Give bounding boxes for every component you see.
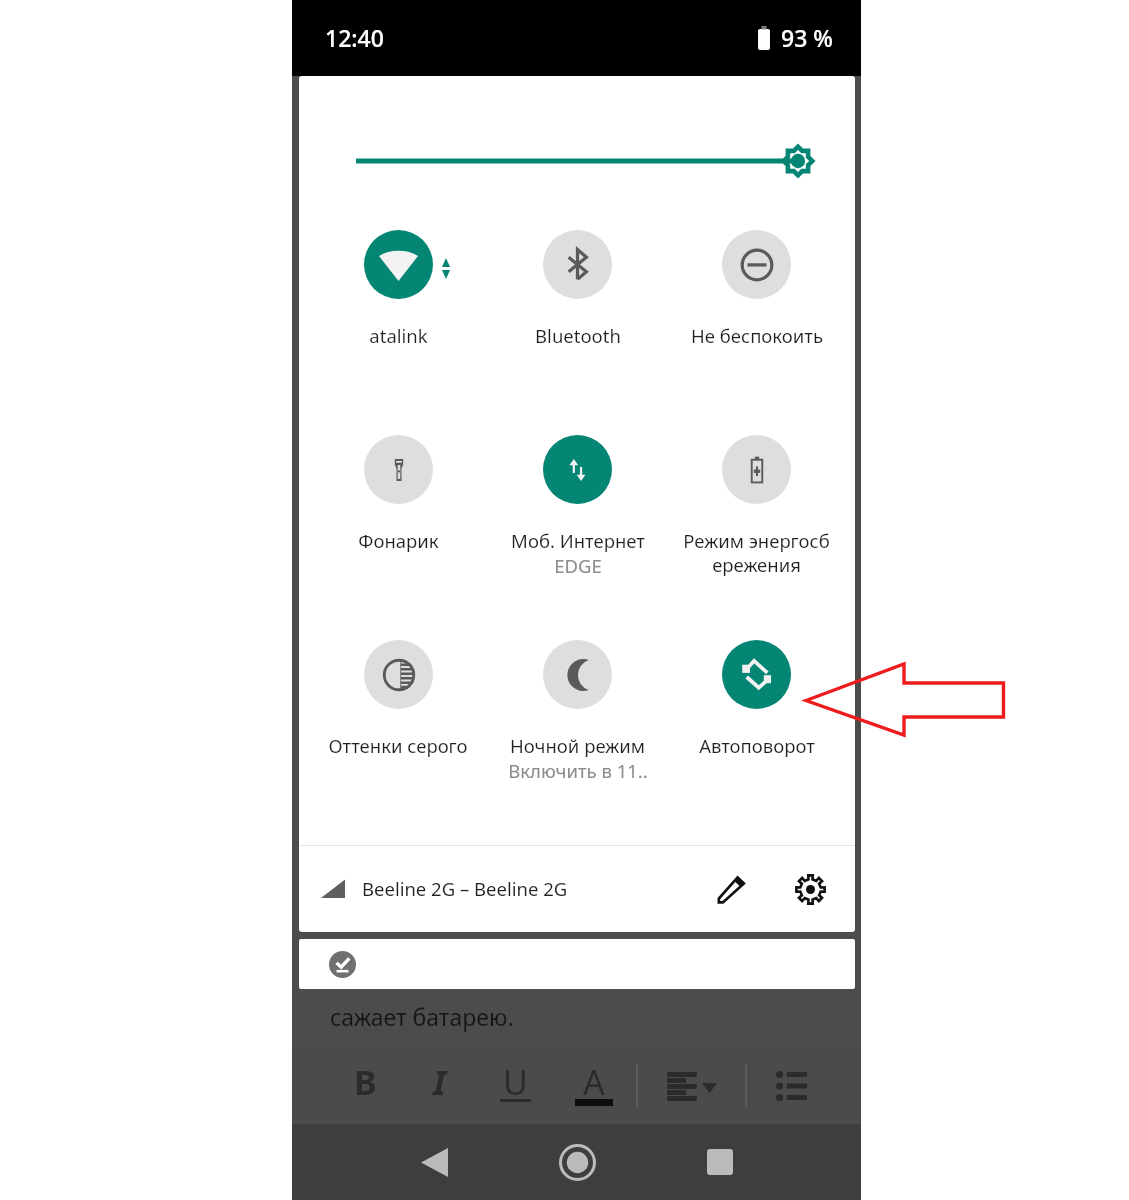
button[interactable]: Фонарик bbox=[308, 435, 488, 553]
button[interactable]: Edit bbox=[709, 866, 755, 912]
other: Annotation arrow bbox=[0, 0, 1129, 1200]
button[interactable]: Не беспокоить bbox=[667, 230, 846, 348]
staticText: atalink bbox=[369, 323, 428, 348]
staticText: Фонарик bbox=[358, 528, 439, 553]
button[interactable]: I bbox=[403, 1048, 477, 1124]
button[interactable]: Bullet list bbox=[752, 1048, 830, 1124]
staticText: сажает батарею. bbox=[330, 1001, 514, 1032]
staticText: Bluetooth bbox=[535, 323, 621, 348]
staticText: Автоповорот bbox=[699, 733, 815, 758]
button[interactable]: Моб. Интернет bbox=[488, 435, 667, 578]
staticText: Beeline 2G – Beeline 2G bbox=[362, 876, 568, 901]
button[interactable]: Ночной режим bbox=[488, 640, 667, 783]
staticText: Моб. Интернет bbox=[511, 528, 645, 553]
button[interactable]: Home bbox=[541, 1124, 613, 1200]
button[interactable]: B bbox=[328, 1048, 402, 1124]
button[interactable]: Bluetooth bbox=[488, 230, 667, 348]
button[interactable]: Режим энергосб ережения bbox=[667, 435, 846, 577]
button[interactable]: atalink bbox=[308, 230, 488, 348]
staticText: U bbox=[503, 1059, 528, 1105]
button[interactable]: A bbox=[557, 1048, 631, 1124]
staticText: Включить в 11.. bbox=[508, 758, 648, 783]
button[interactable]: Alignment bbox=[644, 1048, 740, 1124]
button[interactable]: Автоповорот bbox=[667, 640, 846, 758]
staticText: Режим энергосб ережения bbox=[683, 528, 830, 577]
staticText: 93 % bbox=[781, 22, 833, 53]
staticText: EDGE bbox=[554, 553, 602, 578]
button[interactable]: Settings bbox=[787, 866, 833, 912]
staticText: у экране, а при ярк bbox=[332, 957, 546, 988]
button[interactable]: Back bbox=[398, 1124, 470, 1200]
button[interactable] bbox=[299, 939, 855, 989]
staticText: A bbox=[583, 1059, 605, 1105]
button[interactable]: Recents bbox=[684, 1124, 756, 1200]
staticText: Не беспокоить bbox=[691, 323, 823, 348]
staticText: I bbox=[433, 1059, 447, 1105]
staticText: Ночной режим bbox=[510, 733, 645, 758]
staticText: Оттенки серого bbox=[328, 733, 468, 758]
staticText: 12:40 bbox=[325, 22, 384, 53]
button[interactable]: U bbox=[478, 1048, 552, 1124]
button[interactable]: Оттенки серого bbox=[308, 640, 488, 758]
staticText: B bbox=[354, 1059, 377, 1105]
